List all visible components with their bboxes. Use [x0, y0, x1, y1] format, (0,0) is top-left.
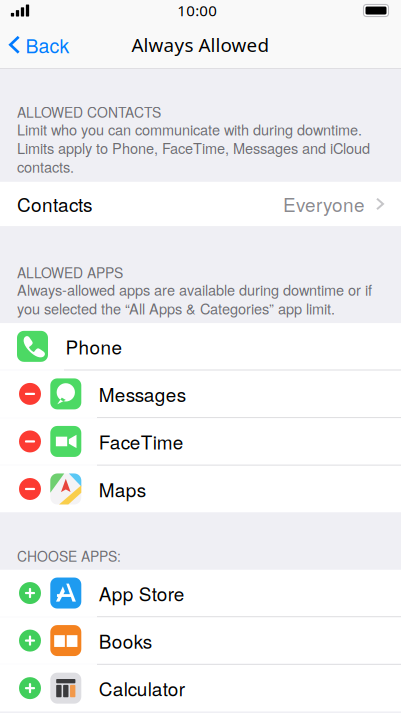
staticText: App Store: [99, 579, 185, 607]
staticText: Everyone: [283, 190, 365, 217]
staticText: FaceTime: [99, 428, 184, 455]
button[interactable]: App Store: [0, 570, 401, 616]
button[interactable]: Calculator: [0, 665, 401, 711]
button[interactable]: Phone: [0, 323, 401, 370]
staticText: Phone: [65, 333, 122, 360]
staticText: Books: [99, 627, 152, 654]
staticText: Always-allowed apps are available during…: [17, 279, 372, 318]
button[interactable]: Maps: [0, 466, 401, 512]
staticText: Limit who you can communicate with durin…: [17, 119, 370, 177]
staticText: Contacts: [17, 190, 92, 217]
staticText: Messages: [99, 380, 186, 407]
button[interactable]: Books: [0, 617, 401, 664]
button[interactable]: Contacts: [0, 182, 401, 226]
staticText: ALLOWED APPS: [17, 262, 123, 282]
staticText: ALLOWED CONTACTS: [17, 102, 161, 122]
staticText: Back: [25, 31, 69, 59]
staticText: Always Allowed: [131, 32, 269, 57]
button[interactable]: Back: [0, 21, 79, 68]
button[interactable]: Messages: [0, 371, 401, 417]
staticText: 10:00: [177, 0, 217, 21]
staticText: Maps: [99, 475, 146, 502]
staticText: CHOOSE APPS:: [17, 546, 121, 566]
button[interactable]: FaceTime: [0, 418, 401, 465]
staticText: Calculator: [99, 675, 185, 702]
